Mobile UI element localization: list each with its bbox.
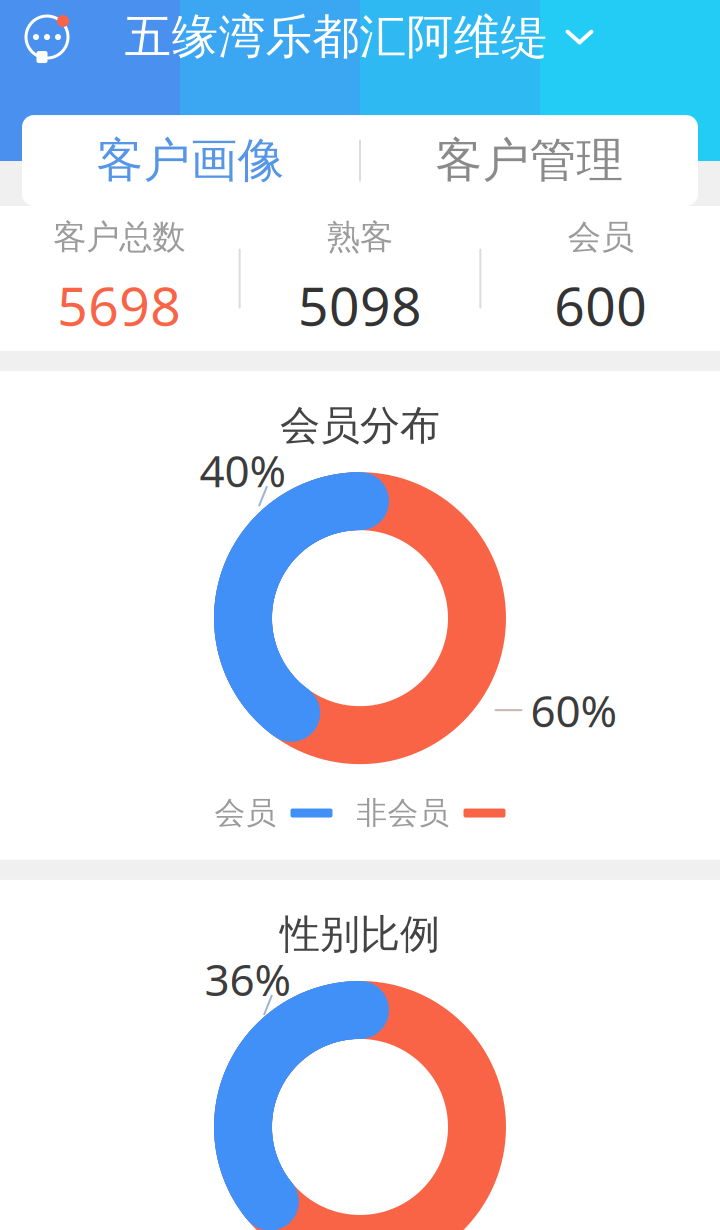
staticText: 非会员 — [356, 794, 449, 832]
staticText: 会员分布 — [280, 401, 440, 450]
staticText: 40% — [199, 441, 286, 499]
staticText: 5098 — [298, 270, 422, 340]
staticText: 客户管理 — [435, 132, 623, 189]
staticText: 600 — [554, 270, 647, 340]
staticText: 熟客 — [327, 217, 393, 258]
staticText: 客户画像 — [96, 132, 284, 189]
staticText: 会员 — [214, 794, 276, 832]
staticText: 36% — [204, 950, 291, 1008]
staticText: 性别比例 — [280, 910, 440, 959]
staticText: 会员 — [568, 217, 634, 258]
button[interactable]: 客户管理 — [361, 115, 698, 206]
button[interactable]: 消息 — [20, 10, 74, 64]
button[interactable]: 客户画像 — [22, 115, 359, 206]
staticText: 客户总数 — [53, 217, 185, 258]
staticText: 5698 — [57, 270, 181, 340]
staticText: 五缘湾乐都汇阿维缇 — [124, 8, 547, 66]
staticText: 60% — [530, 681, 617, 739]
button[interactable]: 五缘湾乐都汇阿维缇 — [124, 8, 595, 66]
